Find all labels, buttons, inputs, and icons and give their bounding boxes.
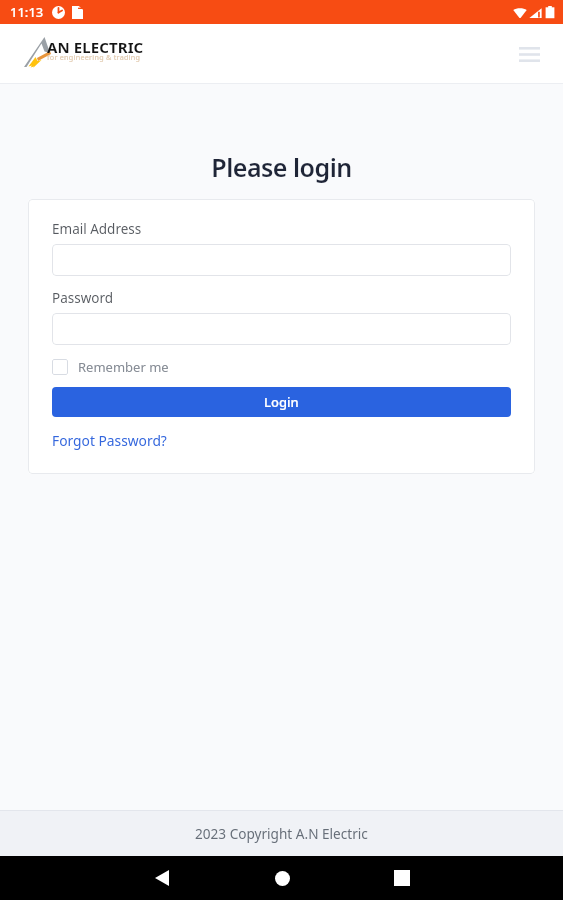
button[interactable]: Recent apps <box>378 856 426 900</box>
button[interactable]: Remember me <box>52 358 169 376</box>
button[interactable]: Forgot Password? <box>52 431 167 450</box>
button[interactable]: Back <box>138 856 186 900</box>
staticText: Password <box>52 289 114 307</box>
staticText: Login <box>264 393 299 411</box>
staticText: Email Address <box>52 220 142 238</box>
button[interactable] <box>52 313 511 345</box>
staticText: Remember me <box>78 358 169 376</box>
staticText: 11:13 <box>10 3 44 21</box>
staticText: for engineering & trading <box>47 52 141 62</box>
button[interactable] <box>52 244 511 276</box>
staticText: Please login <box>0 150 563 184</box>
button[interactable]: Open navigation menu <box>509 34 549 74</box>
staticText: 2023 Copyright A.N Electric <box>195 824 368 843</box>
button[interactable]: Home <box>258 856 306 900</box>
staticText: AN ELECTRIC <box>47 37 144 57</box>
button[interactable]: Login <box>52 387 511 417</box>
